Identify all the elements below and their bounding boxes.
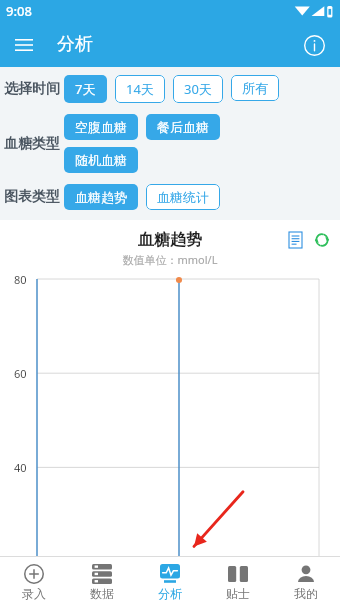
staticText: 40 — [14, 460, 27, 475]
button[interactable]: Refresh — [311, 229, 333, 251]
button[interactable]: 数据 — [68, 557, 136, 608]
button[interactable]: 我的 — [272, 557, 340, 608]
button[interactable]: Info — [298, 29, 330, 61]
button[interactable]: 7天 — [64, 75, 107, 103]
staticText: 图表类型 — [4, 188, 60, 206]
button[interactable]: 血糖趋势 — [64, 184, 138, 210]
staticText: 分析 — [158, 586, 182, 601]
staticText: 数据 — [90, 586, 114, 601]
staticText: 选择时间 — [4, 80, 60, 98]
staticText: 分析 — [57, 33, 93, 56]
button[interactable]: 随机血糖 — [64, 147, 138, 173]
button[interactable]: 14天 — [115, 75, 165, 103]
staticText: 血糖统计 — [157, 189, 209, 205]
button[interactable]: Menu — [7, 28, 41, 62]
staticText: 30天 — [184, 80, 212, 98]
button[interactable]: 贴士 — [204, 557, 272, 608]
staticText: 80 — [14, 272, 27, 287]
staticText: 录入 — [22, 586, 46, 601]
staticText: 随机血糖 — [75, 152, 127, 168]
button[interactable]: List view — [284, 229, 306, 251]
staticText: 贴士 — [226, 586, 250, 601]
staticText: 数值单位：mmol/L — [0, 252, 340, 267]
staticText: 空腹血糖 — [75, 119, 127, 135]
button[interactable]: 血糖统计 — [146, 184, 220, 210]
staticText: 7天 — [75, 80, 96, 98]
button[interactable]: 分析 — [136, 557, 204, 608]
staticText: 我的 — [294, 586, 318, 601]
staticText: 60 — [14, 366, 27, 381]
button[interactable]: 录入 — [0, 557, 68, 608]
button[interactable]: 30天 — [173, 75, 223, 103]
staticText: 餐后血糖 — [157, 119, 209, 135]
staticText: 14天 — [126, 80, 154, 98]
staticText: 9:08 — [6, 2, 32, 20]
staticText: 血糖趋势 — [75, 189, 127, 205]
button[interactable]: 餐后血糖 — [146, 114, 220, 140]
staticText: 血糖类型 — [4, 135, 60, 153]
staticText: 所有 — [242, 80, 268, 96]
button[interactable]: 所有 — [231, 75, 279, 101]
button[interactable]: 空腹血糖 — [64, 114, 138, 140]
staticText: 血糖趋势 — [138, 230, 202, 250]
